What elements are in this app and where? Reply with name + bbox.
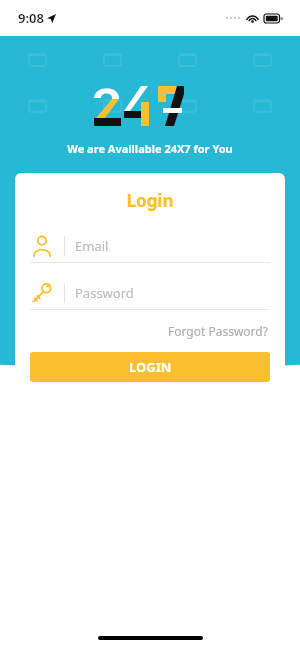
button[interactable]: Email (30, 230, 270, 263)
staticText: 9:08 (18, 9, 44, 27)
staticText: Forgot Password? (168, 323, 268, 339)
button[interactable]: Password (30, 277, 270, 310)
staticText: Login (30, 189, 270, 212)
staticText: LOGIN (129, 358, 172, 376)
other: Password (30, 281, 54, 305)
staticText: Password (75, 284, 134, 302)
staticText: We are Availlable 24X7 for You (67, 141, 233, 156)
other: Email (30, 234, 54, 258)
staticText: Email (75, 237, 109, 255)
button[interactable]: LOGIN (30, 352, 270, 382)
button[interactable]: Forgot Password? (166, 321, 270, 341)
